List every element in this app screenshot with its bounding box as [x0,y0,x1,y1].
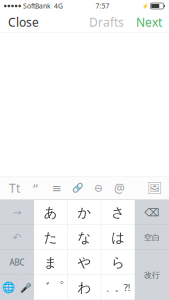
button[interactable]: ABC keyboard [0,250,34,275]
staticText: た [44,229,58,246]
staticText: さ [111,204,125,221]
staticText: @ [114,180,125,196]
button[interactable]: ゛゜ [34,275,68,300]
button[interactable]: さ [101,200,135,225]
button[interactable]: Dictate [17,275,34,300]
button[interactable]: Space [135,225,169,250]
staticText: わ [77,279,91,296]
staticText: 4G [54,2,63,10]
staticText: “ [33,179,38,197]
button[interactable]: Delete [135,200,169,225]
staticText: な [77,229,91,246]
staticText: 🖼 [147,181,162,195]
staticText: 🌐 [2,281,15,294]
button[interactable]: ま [34,250,68,275]
staticText: Close [8,14,39,30]
button[interactable]: List [46,176,67,199]
staticText: あ [44,204,58,221]
button[interactable]: Next [129,12,169,32]
button[interactable]: Drafts [84,12,129,32]
staticText: や [77,254,91,271]
staticText: Drafts [89,14,124,30]
button[interactable]: Add media [144,176,165,199]
staticText: ⚡ [142,3,149,9]
button[interactable]: Blockquote [25,176,46,199]
button[interactable]: Switch keyboard [0,275,17,300]
button[interactable]: 、。?! [101,275,135,300]
button[interactable]: は [101,225,135,250]
button[interactable]: あ [34,200,68,225]
staticText: 、。?! [106,281,131,294]
staticText: ⌫ [144,206,159,218]
staticText: ま [44,254,58,271]
staticText: ABC [9,257,24,268]
staticText: Tt [9,180,20,196]
button[interactable]: Return [135,250,169,300]
button[interactable]: か [68,200,101,225]
staticText: Next [136,14,162,30]
staticText: ら [111,254,125,271]
staticText: ↶ [12,231,21,243]
button[interactable]: Next candidate [0,200,34,225]
staticText: 改行 [144,270,160,280]
staticText: ゛゜ [37,279,65,296]
staticText: 🎤 [20,282,32,293]
button[interactable]: Mention [109,176,130,199]
staticText: SoftBank [23,2,51,10]
button[interactable]: Undo [0,225,34,250]
staticText: → [12,206,21,218]
button[interactable]: や [68,250,101,275]
button[interactable]: Text style [4,176,25,199]
staticText: 7:57 [95,2,109,10]
button[interactable]: た [34,225,68,250]
staticText: ≡ [51,181,61,195]
button[interactable]: Close [0,12,47,32]
button[interactable]: Read more [88,176,109,199]
button[interactable]: わ [68,275,101,300]
staticText: ⊖ [94,182,103,194]
button[interactable]: Link [67,176,88,199]
staticText: 空白 [144,233,160,242]
staticText: 🔗 [71,183,83,193]
button[interactable]: ら [101,250,135,275]
staticText: か [77,204,91,221]
button[interactable]: な [68,225,101,250]
staticText: は [111,229,125,246]
